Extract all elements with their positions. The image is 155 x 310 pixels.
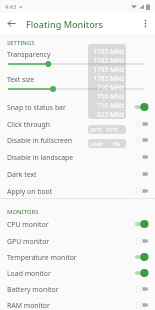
staticText: 710 MHz — [97, 92, 124, 101]
button[interactable]: Temperature monitor — [0, 249, 155, 265]
button[interactable]: Dark text — [0, 166, 155, 182]
button[interactable]: Battery monitor — [0, 281, 155, 297]
button[interactable]: Disable in fullscreen — [0, 132, 155, 148]
staticText: Disable in fullscreen — [7, 136, 73, 145]
button[interactable] — [0, 58, 155, 70]
staticText: 1785 MHz — [93, 74, 124, 83]
staticText: 4:43 — [5, 3, 17, 11]
staticText: Temperature monitor — [7, 253, 77, 262]
button[interactable]: GPU monitor — [0, 233, 155, 249]
staticText: SETTINGS — [7, 39, 35, 47]
button[interactable]: Click through — [0, 116, 155, 132]
staticText: Click through — [7, 120, 51, 129]
button[interactable]: RAM monitor — [0, 297, 155, 310]
button[interactable]: CPU monitor — [0, 216, 155, 232]
staticText: Transparency — [7, 50, 51, 59]
button[interactable]: Apply on boot — [0, 183, 155, 199]
button[interactable]: Back — [1, 13, 21, 33]
staticText: 1785 MHz — [93, 56, 124, 65]
button[interactable] — [0, 83, 155, 95]
staticText: Apply on boot — [7, 187, 53, 196]
staticText: 710 MHz — [97, 83, 124, 92]
button[interactable]: Disable in landscape — [0, 149, 155, 165]
staticText: 1785 MHz — [93, 47, 124, 56]
staticText: Load monitor — [7, 269, 51, 278]
staticText: 7% — [112, 140, 120, 147]
button[interactable]: Snap to status bar — [0, 99, 155, 115]
staticText: 710 MHz — [97, 101, 124, 110]
staticText: MONITORS — [7, 208, 39, 216]
staticText: Load — [90, 140, 103, 147]
button[interactable]: More options — [136, 13, 155, 34]
staticText: Snap to status bar — [7, 103, 66, 112]
staticText: Text size — [7, 75, 35, 84]
button[interactable]: Load monitor — [0, 265, 155, 281]
staticText: 31°C — [106, 126, 119, 133]
staticText: Floating Monitors — [26, 18, 104, 30]
staticText: Battery monitor — [7, 285, 59, 294]
staticText: 1785 MHz — [93, 65, 124, 74]
staticText: RAM monitor — [7, 301, 50, 310]
staticText: CPU monitor — [7, 220, 49, 229]
staticText: 31°C — [90, 126, 103, 133]
staticText: Dark text — [7, 170, 37, 179]
staticText: GPU monitor — [7, 237, 50, 246]
staticText: Disable in landscape — [7, 153, 74, 162]
staticText: 825 MHz — [97, 110, 124, 118]
